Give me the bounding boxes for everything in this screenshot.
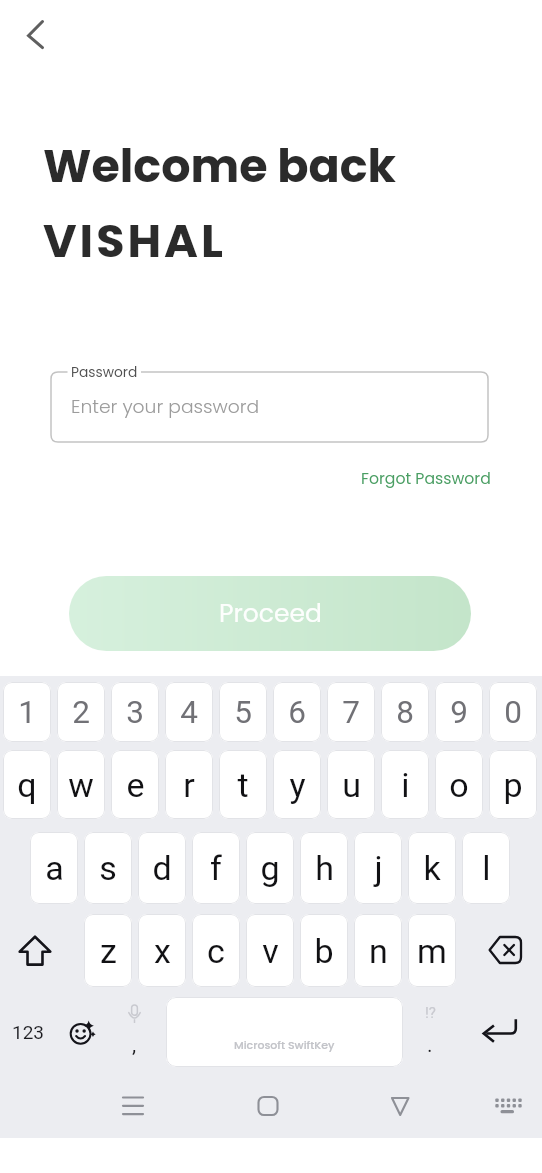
button[interactable]: Enter xyxy=(465,997,535,1067)
button[interactable]: v xyxy=(246,914,294,987)
button[interactable]: Hide keyboard xyxy=(484,1082,532,1130)
staticText: Proceed xyxy=(219,596,322,631)
button[interactable]: b xyxy=(300,914,348,987)
button[interactable]: k xyxy=(408,832,456,904)
staticText: d xyxy=(152,848,172,888)
staticText: . xyxy=(427,1033,433,1058)
button[interactable]: r xyxy=(165,750,213,819)
button[interactable]: g xyxy=(246,832,294,904)
staticText: 6 xyxy=(288,694,306,731)
staticText: 7 xyxy=(342,694,360,731)
button[interactable]: , xyxy=(114,1031,154,1067)
button[interactable]: Space xyxy=(166,997,403,1067)
staticText: 1 xyxy=(18,694,36,731)
staticText: b xyxy=(314,931,334,971)
staticText: z xyxy=(100,931,117,971)
button[interactable]: j xyxy=(354,832,402,904)
staticText: Forgot Password xyxy=(361,468,491,490)
button[interactable]: Proceed xyxy=(69,576,471,651)
staticText: p xyxy=(503,765,523,805)
button[interactable]: !? xyxy=(410,997,450,1029)
staticText: e xyxy=(126,765,145,805)
button[interactable]: 5 xyxy=(219,682,267,742)
staticText: c xyxy=(207,931,225,971)
staticText: !? xyxy=(425,1004,436,1022)
button[interactable]: a xyxy=(30,832,78,904)
staticText: 5 xyxy=(234,694,252,731)
button[interactable]: q xyxy=(3,750,51,819)
button[interactable]: t xyxy=(219,750,267,819)
button[interactable]: x xyxy=(138,914,186,987)
staticText: h xyxy=(315,848,334,888)
button[interactable]: h xyxy=(300,832,348,904)
button[interactable]: 123 xyxy=(0,996,56,1067)
staticText: t xyxy=(237,765,249,805)
button[interactable]: l xyxy=(462,832,510,904)
staticText: i xyxy=(401,765,410,805)
staticText: Microsoft SwiftKey xyxy=(234,1037,335,1052)
button[interactable]: Backspace xyxy=(472,914,542,987)
button[interactable]: 8 xyxy=(381,682,429,742)
button[interactable]: 7 xyxy=(327,682,375,742)
button[interactable]: Emoji xyxy=(56,996,110,1067)
button[interactable]: Home xyxy=(245,1082,293,1130)
button[interactable]: Back xyxy=(377,1082,425,1130)
button[interactable]: 9 xyxy=(435,682,483,742)
button[interactable]: 3 xyxy=(111,682,159,742)
staticText: r xyxy=(183,765,195,805)
staticText: o xyxy=(449,765,469,805)
button[interactable]: y xyxy=(273,750,321,819)
button[interactable]: e xyxy=(111,750,159,819)
button[interactable]: n xyxy=(354,914,402,987)
button[interactable]: o xyxy=(435,750,483,819)
button[interactable]: w xyxy=(57,750,105,819)
staticText: j xyxy=(374,848,383,888)
button[interactable]: 1 xyxy=(3,682,51,742)
staticText: n xyxy=(369,931,388,971)
staticText: a xyxy=(45,848,64,888)
staticText: s xyxy=(99,848,117,888)
button[interactable]: 0 xyxy=(489,682,537,742)
staticText: 4 xyxy=(180,694,198,731)
button[interactable]: c xyxy=(192,914,240,987)
staticText: m xyxy=(417,931,447,971)
staticText: VISHAL xyxy=(43,209,226,273)
button[interactable]: . xyxy=(410,1031,450,1067)
button[interactable]: f xyxy=(192,832,240,904)
staticText: w xyxy=(68,765,94,805)
button[interactable]: z xyxy=(84,914,132,987)
staticText: 3 xyxy=(126,694,144,731)
staticText: 123 xyxy=(12,1021,45,1043)
button[interactable]: Forgot Password xyxy=(357,464,495,494)
staticText: l xyxy=(482,848,491,888)
button[interactable]: Shift xyxy=(0,914,70,987)
staticText: v xyxy=(262,931,279,971)
staticText: y xyxy=(289,765,306,805)
staticText: 0 xyxy=(504,694,522,731)
button[interactable]: s xyxy=(84,832,132,904)
staticText: Enter your password xyxy=(71,393,260,419)
staticText: q xyxy=(17,765,37,805)
staticText: , xyxy=(132,1033,137,1058)
button[interactable]: p xyxy=(489,750,537,819)
button[interactable]: Voice input xyxy=(114,997,154,1029)
button[interactable]: m xyxy=(408,914,456,987)
staticText: 2 xyxy=(72,694,90,731)
button[interactable]: 4 xyxy=(165,682,213,742)
button[interactable]: i xyxy=(381,750,429,819)
button[interactable]: Recent apps xyxy=(110,1082,158,1130)
staticText: Password xyxy=(71,363,138,382)
staticText: 9 xyxy=(450,694,468,731)
staticText: x xyxy=(154,931,171,971)
staticText: 8 xyxy=(396,694,414,731)
staticText: Welcome back xyxy=(43,134,396,198)
button[interactable]: u xyxy=(327,750,375,819)
staticText: f xyxy=(210,848,222,888)
staticText: k xyxy=(423,848,441,888)
button[interactable]: 6 xyxy=(273,682,321,742)
button[interactable]: 2 xyxy=(57,682,105,742)
staticText: u xyxy=(342,765,361,805)
button[interactable]: Back xyxy=(8,8,64,64)
staticText: g xyxy=(260,848,280,888)
button[interactable]: d xyxy=(138,832,186,904)
